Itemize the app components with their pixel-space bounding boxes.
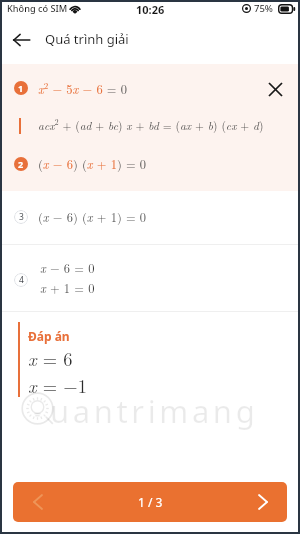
button[interactable]: Back <box>3 22 39 58</box>
staticText: x − 6 = 0 <box>40 259 95 277</box>
staticText: 1 <box>18 82 24 94</box>
staticText: uantrimang <box>50 390 259 432</box>
staticText: Đáp án <box>28 328 70 344</box>
staticText: 1 / 3 <box>138 494 163 510</box>
staticText: x2 − 5x − 6 = 0 <box>38 79 128 97</box>
staticText: x = 6 <box>28 345 73 371</box>
staticText: (x − 6) (x + 1) = 0 <box>38 208 147 226</box>
staticText: 75% <box>254 2 273 15</box>
staticText: 3 <box>19 211 24 223</box>
staticText: acx2 + (ad + bc) x + bd = (ax + b) (cx +… <box>38 116 264 133</box>
staticText: x + 1 = 0 <box>40 279 95 297</box>
staticText: 2 <box>18 158 24 170</box>
button[interactable]: Previous step <box>13 482 62 522</box>
staticText: Quá trình giải <box>45 30 129 48</box>
button[interactable]: Next step <box>238 482 287 522</box>
staticText: x = −1 <box>28 372 87 398</box>
button[interactable]: Close <box>262 76 288 102</box>
staticText: 4 <box>19 274 24 286</box>
staticText: (x − 6) (x + 1) = 0 <box>38 155 147 173</box>
staticText: Không có SIM <box>7 2 68 15</box>
staticText: 10:26 <box>136 2 165 17</box>
